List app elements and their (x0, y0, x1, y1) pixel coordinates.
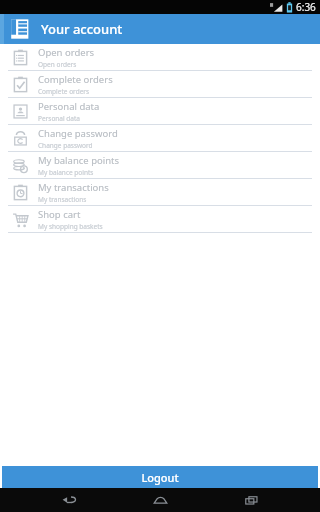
staticText: Change password (38, 127, 118, 140)
button[interactable]: Back (47, 488, 91, 512)
button[interactable]: Personal data (0, 98, 320, 125)
staticText: Personal data (38, 114, 80, 123)
button[interactable]: My balance points (0, 152, 320, 179)
button[interactable]: Change password (0, 125, 320, 152)
button[interactable]: Open orders (0, 44, 320, 71)
button[interactable]: My transactions (0, 179, 320, 206)
button[interactable]: Shop cart (0, 206, 320, 233)
button[interactable]: Home (138, 488, 182, 512)
staticText: Personal data (38, 100, 100, 113)
staticText: Shop cart (38, 208, 81, 221)
staticText: My transactions (38, 181, 109, 194)
staticText: Your account (41, 20, 123, 38)
staticText: My shopping baskets (38, 222, 103, 231)
staticText: Open orders (38, 46, 95, 59)
button[interactable]: Recent apps (229, 488, 273, 512)
staticText: My balance points (38, 168, 94, 177)
button[interactable]: Complete orders (0, 71, 320, 98)
staticText: Change password (38, 141, 93, 150)
staticText: 6:36 (296, 0, 316, 14)
staticText: Open orders (38, 60, 77, 69)
button[interactable]: Logout (2, 466, 318, 488)
staticText: My transactions (38, 195, 87, 204)
staticText: Logout (141, 470, 179, 485)
staticText: Complete orders (38, 73, 113, 86)
staticText: My balance points (38, 154, 120, 167)
staticText: Complete orders (38, 87, 90, 96)
